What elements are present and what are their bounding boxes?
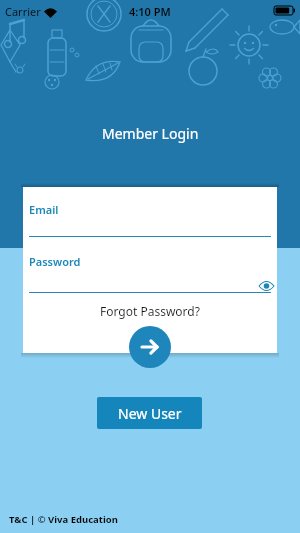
staticText: Member Login	[102, 124, 199, 143]
button[interactable]	[259, 281, 274, 291]
staticText: T&C | © Viva Education	[9, 513, 118, 526]
button[interactable]: Forgot Password?	[100, 303, 200, 319]
button[interactable]	[29, 251, 255, 293]
button[interactable]	[29, 199, 271, 238]
staticText: 4:10 PM	[129, 4, 171, 19]
button[interactable]	[129, 326, 171, 368]
button[interactable]: New User	[97, 397, 202, 429]
staticText: Password	[29, 254, 81, 269]
staticText: Carrier	[5, 4, 41, 19]
staticText: New User	[118, 404, 182, 423]
staticText: Email	[29, 202, 59, 217]
